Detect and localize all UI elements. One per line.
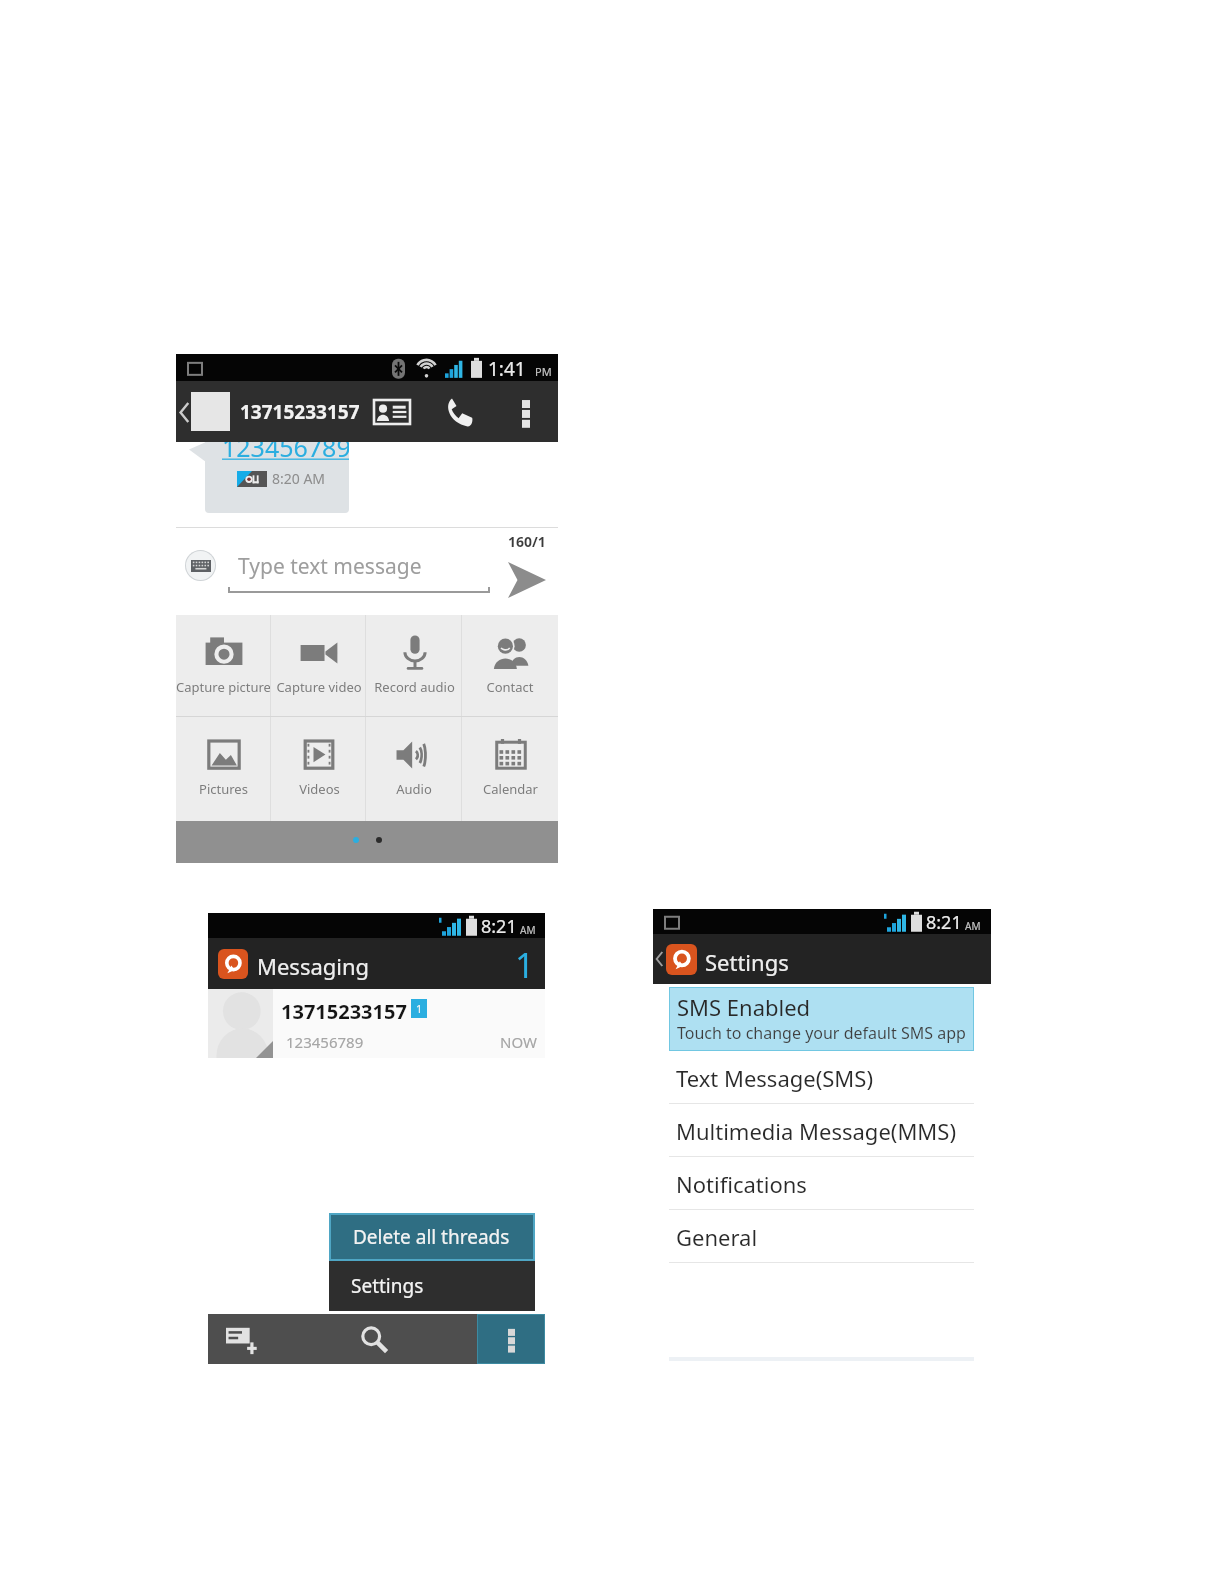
button[interactable]: Call bbox=[437, 392, 479, 432]
button[interactable]: Audio bbox=[366, 717, 462, 821]
staticText: Pictures bbox=[199, 780, 248, 798]
staticText: Videos bbox=[299, 780, 340, 798]
staticText: AM bbox=[965, 919, 981, 933]
button[interactable]: Contact card bbox=[368, 393, 416, 431]
staticText: 1:41 bbox=[488, 356, 526, 382]
button[interactable]: Back bbox=[653, 944, 665, 974]
staticText: 123456789 bbox=[222, 442, 349, 464]
staticText: 123456789 bbox=[286, 1032, 364, 1052]
staticText: Text Message(SMS) bbox=[676, 1063, 873, 1093]
staticText: Type text message bbox=[238, 552, 422, 581]
staticText: Contact bbox=[486, 678, 534, 696]
staticText: 8:20 AM bbox=[272, 469, 326, 488]
button[interactable]: Settings bbox=[329, 1261, 535, 1311]
button[interactable]: 13715233157 bbox=[208, 989, 545, 1058]
button[interactable]: Record audio bbox=[366, 615, 462, 716]
button[interactable]: Videos bbox=[271, 717, 366, 821]
staticText: SMS Enabled bbox=[677, 992, 811, 1022]
button[interactable]: Contact bbox=[462, 615, 558, 716]
staticText: Settings bbox=[705, 947, 789, 977]
button[interactable]: New message bbox=[208, 1314, 343, 1364]
staticText: Capture picture bbox=[176, 678, 271, 696]
staticText: PM bbox=[535, 364, 552, 379]
button[interactable]: Search bbox=[343, 1314, 477, 1364]
staticText: AM bbox=[520, 923, 536, 937]
staticText: Capture video bbox=[276, 678, 362, 696]
staticText: 13715233157 bbox=[281, 998, 407, 1025]
staticText: Notifications bbox=[676, 1169, 807, 1199]
button[interactable]: More options bbox=[478, 1315, 544, 1363]
staticText: Messaging bbox=[257, 951, 370, 981]
button[interactable]: Text Message(SMS) bbox=[653, 1051, 991, 1104]
staticText: 1 bbox=[416, 1001, 423, 1016]
button[interactable]: Send bbox=[504, 557, 550, 603]
staticText: Record audio bbox=[374, 678, 455, 696]
staticText: Audio bbox=[396, 780, 432, 798]
staticText: 8:21 bbox=[481, 914, 517, 939]
staticText: 1 bbox=[515, 942, 535, 988]
staticText: NOW bbox=[500, 1032, 537, 1052]
button[interactable]: Delete all threads bbox=[331, 1215, 533, 1259]
staticText: 160/1 bbox=[508, 532, 546, 551]
staticText: Touch to change your default SMS app bbox=[677, 1022, 966, 1044]
staticText: Settings bbox=[351, 1273, 424, 1299]
staticText: Delete all threads bbox=[353, 1224, 510, 1250]
staticText: General bbox=[676, 1222, 758, 1252]
button[interactable]: Keyboard bbox=[186, 551, 215, 580]
button[interactable]: Calendar bbox=[462, 717, 558, 821]
staticText: 13715233157 bbox=[240, 399, 360, 425]
staticText: Calendar bbox=[483, 780, 538, 798]
button[interactable]: Pictures bbox=[176, 717, 271, 821]
button[interactable]: Notifications bbox=[653, 1157, 991, 1210]
button[interactable]: More options bbox=[512, 392, 540, 432]
staticText: Multimedia Message(MMS) bbox=[676, 1116, 956, 1146]
button[interactable]: SMS Enabled bbox=[670, 988, 973, 1050]
button[interactable]: General bbox=[653, 1210, 991, 1263]
staticText: 8:21 bbox=[926, 910, 962, 935]
button[interactable]: Multimedia Message(MMS) bbox=[653, 1104, 991, 1157]
button[interactable]: Capture picture bbox=[176, 615, 271, 716]
button[interactable]: Back bbox=[177, 394, 191, 430]
button[interactable]: Capture video bbox=[271, 615, 366, 716]
